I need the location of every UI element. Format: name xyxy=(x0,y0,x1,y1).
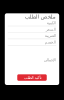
staticText: الخصم xyxy=(44,40,55,44)
staticText: الكمية xyxy=(46,20,55,25)
staticText: تأكيد الطلب xyxy=(23,75,41,80)
staticText: ملخص الطلب xyxy=(24,13,55,20)
staticText: الإجمالي xyxy=(43,58,55,62)
button[interactable]: تأكيد الطلب xyxy=(17,74,47,81)
staticText: الضريبة xyxy=(44,33,55,38)
staticText: السعر xyxy=(45,27,55,31)
